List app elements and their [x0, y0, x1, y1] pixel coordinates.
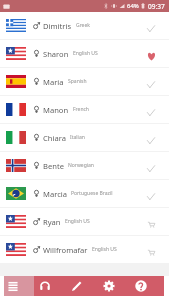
staticText: Willfromafar	[43, 245, 88, 255]
button[interactable]: Settings	[93, 276, 125, 296]
staticText: Maria	[43, 77, 64, 87]
button[interactable]: Dimitris	[0, 12, 169, 39]
button[interactable]: Edit	[61, 276, 93, 296]
staticText: Greek	[76, 22, 90, 29]
staticText: Ryan	[43, 217, 61, 227]
staticText: Portuguese Brazil	[71, 190, 113, 197]
staticText: Manon	[43, 105, 69, 115]
button[interactable]: Ryan	[0, 208, 169, 235]
button[interactable]: Willfromafar	[0, 236, 169, 263]
button[interactable]: Help	[125, 276, 157, 296]
button[interactable]: Listen	[29, 276, 61, 296]
button[interactable]: Marcia	[0, 180, 169, 207]
staticText: 64%	[127, 2, 139, 10]
staticText: French	[73, 106, 89, 113]
staticText: Italian	[70, 134, 85, 141]
staticText: Bente	[43, 161, 64, 171]
staticText: English US	[73, 50, 98, 57]
button[interactable]: Bente	[0, 152, 169, 179]
button[interactable]: Chiara	[0, 124, 169, 151]
button[interactable]: Maria	[0, 68, 169, 95]
staticText: Chiara	[43, 133, 66, 143]
staticText: Sharon	[43, 49, 69, 59]
staticText: 09:37	[148, 2, 165, 11]
staticText: English US	[92, 246, 117, 253]
button[interactable]: Voices	[0, 276, 29, 296]
staticText: Norwegian	[68, 162, 94, 169]
staticText: English US	[65, 218, 90, 225]
button[interactable]: Manon	[0, 96, 169, 123]
button[interactable]: Sharon	[0, 40, 169, 67]
staticText: Marcia	[43, 189, 67, 199]
staticText: Spanish	[68, 78, 87, 85]
staticText: Dimitris	[43, 21, 72, 31]
